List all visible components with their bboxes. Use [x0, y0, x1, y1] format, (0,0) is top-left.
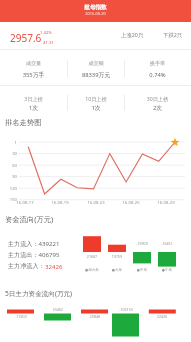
staticText: -17403 — [5, 314, 37, 319]
staticText: -15909 — [126, 241, 158, 246]
staticText: 16-08-23 — [78, 200, 114, 206]
staticText: 16-08-17 — [7, 200, 43, 206]
staticText: 32426 — [45, 262, 63, 270]
button[interactable] — [0, 86, 67, 123]
staticText: 32426 — [146, 314, 178, 319]
staticText: ●超大单 — [76, 268, 108, 273]
staticText: 成交额 — [67, 60, 125, 67]
button[interactable] — [67, 86, 125, 123]
staticText: 3日上榜 — [0, 95, 67, 102]
staticText: ●小单 — [151, 268, 183, 273]
staticText: 88339万元 — [67, 71, 125, 79]
staticText: 0.74% — [124, 71, 191, 79]
staticText: 2957.6 — [10, 31, 42, 45]
staticText: 10759 — [101, 254, 133, 259]
staticText: 16-08-19 — [42, 200, 78, 206]
staticText: 上涨20只 — [121, 31, 144, 38]
staticText: 355万手 — [0, 71, 67, 79]
staticText: 25848 — [79, 314, 111, 319]
staticText: -16451 — [151, 241, 183, 246]
staticText: 2016-08-30 — [0, 11, 191, 16]
staticText: 90 — [0, 174, 17, 180]
staticText: 排名走势图 — [5, 118, 42, 127]
button[interactable] — [0, 50, 67, 89]
button[interactable] — [124, 50, 191, 89]
staticText: 60 — [0, 163, 17, 169]
staticText: 150 — [0, 197, 17, 203]
staticText: 1 — [0, 140, 17, 146]
staticText: 1.42% — [40, 30, 52, 36]
button[interactable] — [124, 86, 191, 123]
staticText: 41.31 — [43, 40, 54, 46]
staticText: 30 — [0, 151, 17, 157]
staticText: ●大单 — [101, 268, 133, 273]
staticText: 16-08-25 — [113, 200, 149, 206]
staticText: 1次 — [0, 104, 67, 112]
staticText: 55462 — [42, 307, 74, 312]
button[interactable]: 上涨20只 — [121, 31, 144, 38]
staticText: 16-08-29 — [148, 200, 184, 206]
staticText: 成交量 — [0, 60, 67, 67]
staticText: 1次 — [67, 104, 125, 112]
staticText: 换手率 — [124, 60, 191, 67]
button[interactable]: 航母指数 — [0, 0, 191, 22]
staticText: 5日主力资金流向(万元) — [5, 289, 73, 298]
staticText: 2次 — [124, 104, 191, 112]
staticText: 21687 — [76, 254, 108, 259]
staticText: 120 — [0, 186, 17, 192]
staticText: ●中单 — [126, 268, 158, 273]
staticText: 航母指数 — [0, 4, 191, 11]
staticText: 主力流出：406795 — [8, 250, 60, 258]
staticText: 主力净流入： — [8, 262, 45, 270]
staticText: 主力流入：439221 — [8, 239, 60, 247]
button[interactable]: 下跌2只 — [163, 31, 183, 38]
staticText: -103153 — [110, 307, 142, 312]
button[interactable] — [67, 50, 125, 89]
staticText: 资金流向(万元) — [5, 214, 54, 224]
staticText: 10日上榜 — [67, 95, 125, 102]
staticText: 30日上榜 — [124, 95, 191, 102]
staticText: 下跌2只 — [163, 31, 183, 38]
